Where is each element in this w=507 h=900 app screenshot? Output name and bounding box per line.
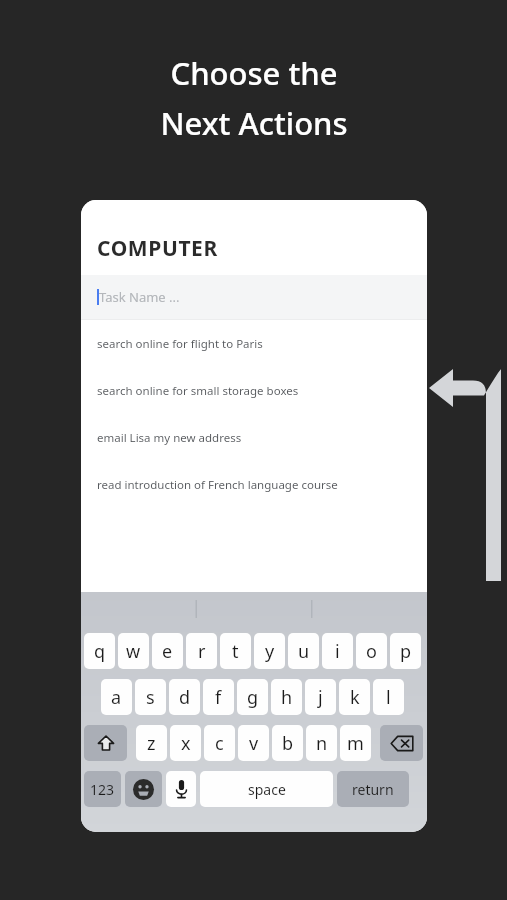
staticText: x — [181, 731, 191, 756]
staticText: p — [400, 639, 412, 664]
button[interactable]: Emoji — [125, 771, 162, 807]
staticText: d — [179, 685, 191, 710]
button[interactable]: 123 — [84, 771, 121, 807]
staticText: a — [111, 685, 122, 710]
staticText: z — [147, 731, 156, 756]
staticText: search online for flight to Paris — [97, 336, 263, 352]
button[interactable]: b — [272, 725, 303, 761]
button[interactable]: v — [238, 725, 269, 761]
button[interactable]: m — [340, 725, 371, 761]
staticText: b — [282, 731, 294, 756]
button[interactable]: l — [373, 679, 404, 715]
staticText: return — [352, 780, 394, 799]
staticText: n — [316, 731, 328, 756]
button[interactable]: f — [203, 679, 234, 715]
staticText: i — [335, 639, 340, 664]
button[interactable]: i — [322, 633, 353, 669]
staticText: Task Name ... — [99, 288, 180, 306]
button[interactable]: g — [237, 679, 268, 715]
staticText: c — [215, 731, 224, 756]
staticText: email Lisa my new address — [97, 430, 242, 446]
button[interactable]: email Lisa my new address — [81, 414, 427, 461]
staticText: j — [318, 685, 323, 710]
button[interactable]: z — [136, 725, 167, 761]
button[interactable]: r — [186, 633, 217, 669]
staticText: Choose the — [170, 52, 338, 94]
button[interactable]: j — [305, 679, 336, 715]
button[interactable]: o — [356, 633, 387, 669]
button[interactable]: Shift — [84, 725, 127, 761]
staticText: q — [94, 639, 106, 664]
button[interactable]: return — [337, 771, 409, 807]
staticText: m — [347, 731, 364, 756]
staticText: 123 — [90, 780, 115, 799]
button[interactable]: w — [118, 633, 149, 669]
button[interactable]: a — [101, 679, 132, 715]
staticText: f — [215, 685, 222, 710]
staticText: Next Actions — [160, 102, 348, 144]
button[interactable]: s — [135, 679, 166, 715]
button[interactable]: q — [84, 633, 115, 669]
button[interactable]: search online for small storage boxes — [81, 367, 427, 414]
button[interactable]: space — [200, 771, 333, 807]
staticText: v — [249, 731, 259, 756]
button[interactable]: n — [306, 725, 337, 761]
button[interactable]: k — [339, 679, 370, 715]
button[interactable]: d — [169, 679, 200, 715]
button[interactable]: p — [390, 633, 421, 669]
button[interactable]: y — [254, 633, 285, 669]
button[interactable]: read introduction of French language cou… — [81, 461, 427, 508]
staticText: y — [265, 639, 275, 664]
staticText: g — [247, 685, 259, 710]
staticText: w — [126, 639, 141, 664]
button[interactable]: Task Name ... — [81, 275, 427, 319]
button[interactable]: COMPUTER — [81, 200, 427, 275]
staticText: read introduction of French language cou… — [97, 477, 338, 493]
button[interactable]: x — [170, 725, 201, 761]
staticText: k — [350, 685, 360, 710]
button[interactable]: e — [152, 633, 183, 669]
button[interactable]: Delete — [380, 725, 423, 761]
staticText: search online for small storage boxes — [97, 383, 299, 399]
button[interactable]: t — [220, 633, 251, 669]
staticText: t — [232, 639, 239, 664]
button[interactable]: h — [271, 679, 302, 715]
staticText: COMPUTER — [97, 234, 218, 263]
staticText: space — [248, 780, 286, 799]
staticText: u — [298, 639, 310, 664]
staticText: o — [366, 639, 377, 664]
staticText: h — [281, 685, 293, 710]
button[interactable]: search online for flight to Paris — [81, 320, 427, 367]
staticText: l — [386, 685, 391, 710]
button[interactable]: c — [204, 725, 235, 761]
staticText: s — [146, 685, 155, 710]
staticText: r — [198, 639, 206, 664]
staticText: e — [162, 639, 173, 664]
button[interactable]: u — [288, 633, 319, 669]
button[interactable]: Voice input — [166, 771, 196, 807]
